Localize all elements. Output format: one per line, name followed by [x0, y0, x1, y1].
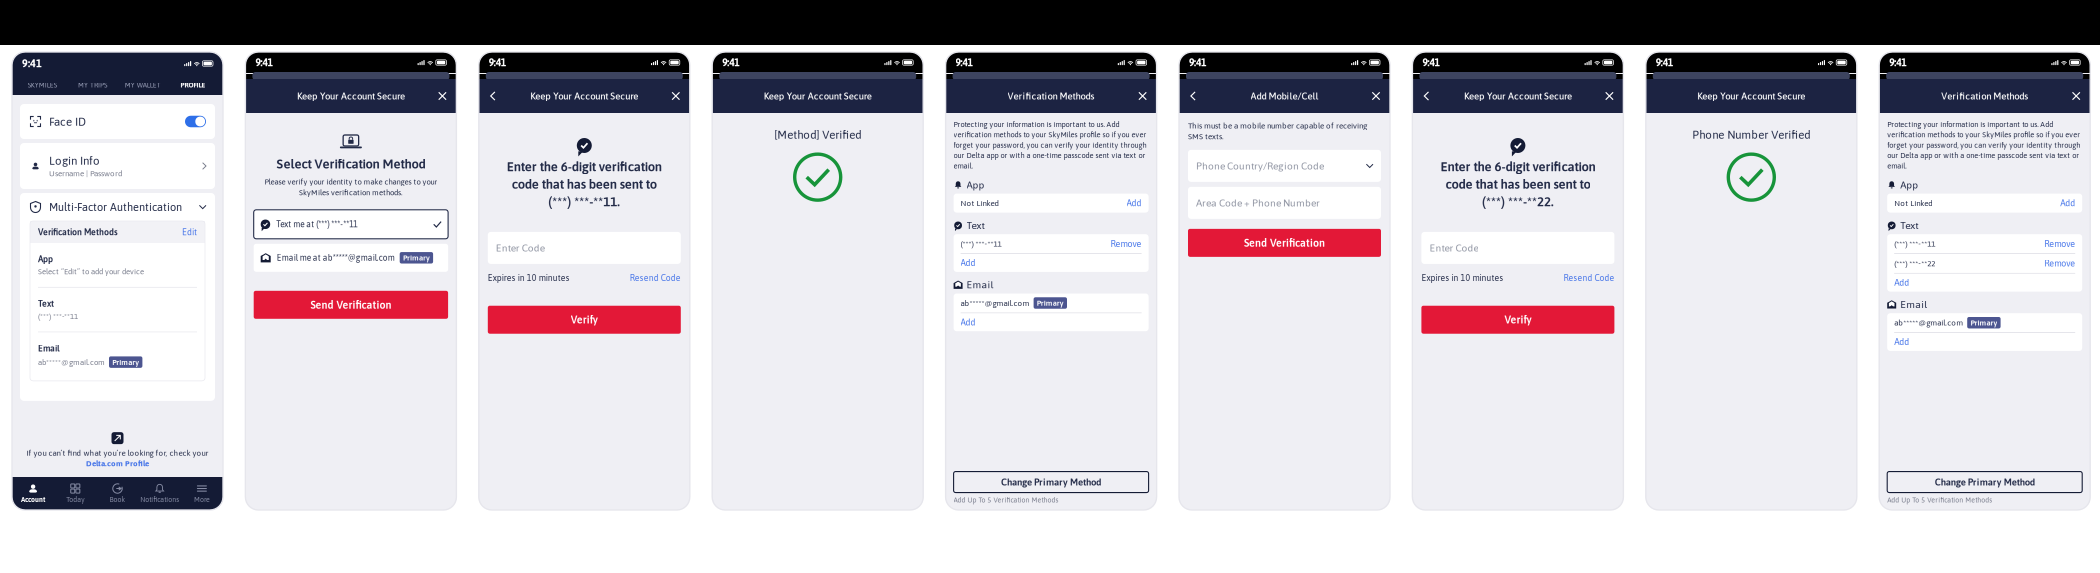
staticText: App — [38, 254, 53, 264]
staticText: Add — [961, 258, 976, 268]
staticText: Book — [109, 495, 125, 503]
button[interactable]: Add — [1894, 337, 1909, 347]
button[interactable]: Edit — [182, 227, 197, 237]
staticText: Primary — [1037, 299, 1064, 307]
staticText: Verify — [571, 314, 598, 326]
staticText: Phone Number Verified — [1692, 128, 1810, 141]
button[interactable]: Change Primary Method — [1887, 472, 2082, 493]
button[interactable]: Resend Code — [630, 273, 681, 283]
button[interactable]: Close — [1600, 82, 1618, 110]
button[interactable]: Send Verification — [254, 291, 448, 319]
button[interactable]: Close — [667, 82, 685, 110]
staticText: Change Primary Method — [1001, 477, 1101, 488]
staticText: SkyMiles verification methods. — [299, 188, 403, 197]
button[interactable]: MY TRIPS — [67, 81, 117, 89]
button[interactable]: Verify — [488, 306, 681, 334]
staticText: Text — [1900, 220, 1918, 231]
button[interactable]: Add — [961, 258, 976, 268]
staticText: Add Up To 5 Verification Methods — [1887, 496, 1992, 504]
staticText: Keep Your Account Secure — [1697, 90, 1805, 101]
button[interactable]: Text me at (***) ***-**11 — [254, 210, 448, 239]
staticText: Login Info — [49, 154, 100, 167]
staticText: our Delta app or with a one-time passcod… — [1887, 151, 2079, 160]
staticText: Keep Your Account Secure — [530, 90, 638, 101]
button[interactable]: Add — [2060, 198, 2075, 208]
button[interactable]: Login Info — [20, 143, 215, 189]
button[interactable]: Verify — [1421, 306, 1614, 334]
button[interactable]: PROFILE — [168, 81, 218, 89]
staticText: forget your password, you can verify you… — [954, 141, 1147, 149]
staticText: Primary — [403, 253, 430, 262]
button[interactable]: Multi-Factor Authentication — [20, 193, 215, 221]
button[interactable]: Email me at ab*****@gmail.com — [254, 244, 448, 272]
button[interactable]: Remove — [2044, 239, 2075, 249]
button[interactable]: Remove — [2044, 258, 2075, 268]
staticText: 9:41 — [489, 57, 506, 68]
staticText: [Method] Verified — [774, 128, 861, 141]
staticText: ab*****@gmail.com — [961, 298, 1030, 308]
staticText: More — [194, 495, 210, 503]
button[interactable]: Close — [2067, 82, 2085, 110]
staticText: Add Up To 5 Verification Methods — [954, 496, 1059, 504]
button[interactable]: Change Primary Method — [954, 472, 1149, 493]
button[interactable]: Account — [12, 483, 54, 503]
button[interactable]: Phone Country/Region Code — [1188, 150, 1381, 182]
button[interactable]: Back — [1417, 82, 1435, 110]
button[interactable]: Resend Code — [1563, 273, 1614, 283]
button[interactable]: Back — [484, 82, 502, 110]
button[interactable]: Notifications — [139, 483, 181, 503]
staticText: Enter Code — [496, 242, 545, 254]
staticText: Text me at (***) ***-**11 — [276, 220, 357, 229]
button[interactable]: Close — [1367, 82, 1385, 110]
staticText: (***) ***-**22. — [1482, 194, 1554, 209]
staticText: Multi-Factor Authentication — [49, 201, 182, 213]
button[interactable]: Close — [1134, 82, 1152, 110]
button[interactable]: Enter Code — [1421, 232, 1614, 264]
staticText: Primary — [112, 358, 139, 367]
button[interactable]: Book — [96, 483, 139, 503]
button[interactable]: More — [181, 483, 223, 503]
staticText: Username | Password — [49, 169, 123, 178]
button[interactable]: Send Verification — [1188, 229, 1381, 257]
staticText: Email — [38, 343, 60, 353]
staticText: Keep Your Account Secure — [1464, 90, 1572, 101]
staticText: Keep Your Account Secure — [764, 90, 872, 101]
staticText: 9:41 — [1656, 57, 1673, 68]
staticText: Send Verification — [1244, 237, 1325, 249]
staticText: Verify — [1504, 314, 1531, 326]
button[interactable]: Enter Code — [488, 232, 681, 264]
staticText: code that has been sent to — [1445, 176, 1590, 191]
staticText: Resend Code — [1563, 273, 1614, 283]
staticText: 9:41 — [22, 57, 42, 70]
staticText: Change Primary Method — [1935, 477, 2035, 488]
staticText: Select “Edit” to add your device — [38, 267, 144, 276]
button[interactable]: Back — [1184, 82, 1202, 110]
button[interactable]: Add — [1127, 198, 1142, 208]
staticText: 9:41 — [255, 57, 272, 68]
staticText: Account — [21, 495, 45, 503]
staticText: Add — [1127, 198, 1142, 208]
staticText: email. — [954, 161, 973, 170]
staticText: Expires in 10 minutes — [1421, 273, 1503, 283]
staticText: Protecting your information is important… — [954, 120, 1120, 129]
staticText: ab*****@gmail.com — [1894, 318, 1963, 327]
staticText: (***) ***-**11 — [38, 312, 78, 321]
staticText: Remove — [2044, 239, 2075, 249]
staticText: Verification Methods — [38, 227, 118, 237]
button[interactable]: Today — [54, 483, 96, 503]
staticText: Area Code + Phone Number — [1196, 197, 1320, 209]
button[interactable]: Close — [433, 82, 451, 110]
button[interactable]: Area Code + Phone Number — [1188, 187, 1381, 219]
staticText: our Delta app or with a one-time passcod… — [954, 151, 1146, 160]
staticText: Verification Methods — [1008, 90, 1095, 101]
button[interactable]: SKYMILES — [17, 81, 67, 89]
staticText: Email me at ab*****@gmail.com — [277, 253, 395, 263]
button[interactable]: Remove — [1111, 239, 1142, 249]
staticText: Not Linked — [961, 198, 1000, 208]
button[interactable]: Delta.com Profile — [86, 459, 149, 468]
staticText: Enter Code — [1429, 242, 1478, 254]
staticText: 9:41 — [956, 57, 973, 68]
button[interactable]: MY WALLET — [117, 81, 168, 89]
button[interactable]: Add — [1894, 278, 1909, 288]
button[interactable]: Add — [961, 317, 976, 327]
